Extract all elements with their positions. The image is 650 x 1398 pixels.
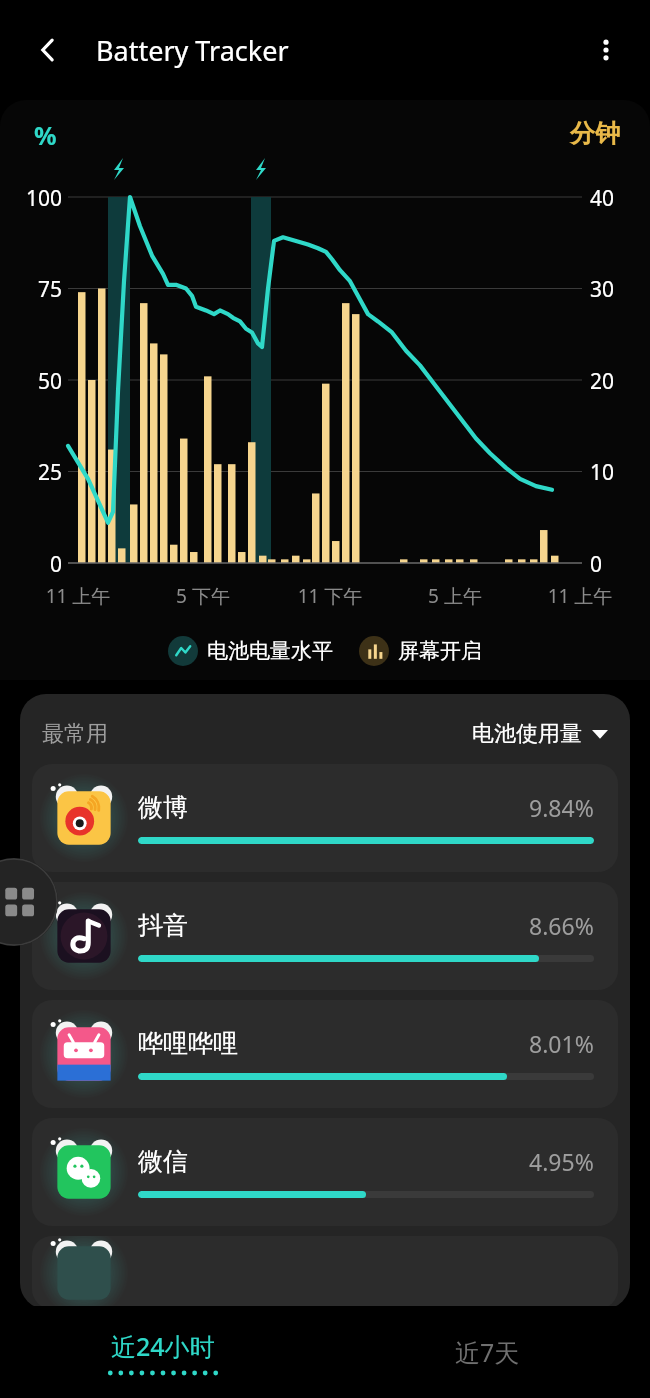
button[interactable]: 哗哩哗哩 — [32, 1000, 618, 1108]
button[interactable]: 屏幕开启 — [359, 636, 482, 666]
staticText: 11 上午 — [23, 583, 133, 609]
staticText: 分钟 — [570, 118, 620, 149]
staticText: 11 下午 — [275, 583, 385, 609]
button[interactable]: 电池电量水平 — [168, 636, 333, 666]
staticText: 8.01% — [529, 1028, 594, 1059]
staticText: Battery Tracker — [96, 32, 289, 69]
button[interactable]: 近7天 — [325, 1306, 650, 1398]
staticText: 30 — [590, 275, 636, 304]
staticText: 100 — [0, 184, 62, 213]
button[interactable]: 微博 — [32, 764, 618, 872]
staticText: 0 — [590, 550, 636, 579]
staticText: 电池使用量 — [472, 720, 582, 748]
button[interactable]: More options — [580, 24, 632, 76]
staticText: 11 上午 — [525, 583, 635, 609]
button[interactable]: 抖音 — [32, 882, 618, 990]
staticText: 10 — [590, 458, 636, 487]
staticText: 近7天 — [455, 1335, 520, 1369]
staticText: 20 — [590, 367, 636, 396]
button[interactable]: 电池使用量 — [472, 720, 608, 748]
staticText: 4.95% — [529, 1146, 594, 1177]
staticText: 微信 — [138, 1146, 188, 1177]
staticText: % — [34, 118, 57, 152]
staticText: 5 上午 — [400, 583, 510, 609]
button[interactable]: 近24小时 — [0, 1306, 325, 1398]
staticText: 50 — [0, 367, 62, 396]
staticText: 0 — [0, 550, 62, 579]
button[interactable] — [32, 1236, 618, 1309]
staticText: 9.84% — [529, 792, 594, 823]
staticText: 电池电量水平 — [207, 638, 333, 664]
staticText: 抖音 — [138, 910, 188, 941]
staticText: 近24小时 — [111, 1329, 215, 1363]
staticText: 25 — [0, 458, 62, 487]
button[interactable]: 微信 — [32, 1118, 618, 1226]
button[interactable]: Apps grid — [0, 858, 58, 946]
staticText: 8.66% — [529, 910, 594, 941]
staticText: 75 — [0, 275, 62, 304]
staticText: 哗哩哗哩 — [138, 1028, 238, 1059]
staticText: 微博 — [138, 792, 188, 823]
button[interactable]: Back — [22, 24, 74, 76]
staticText: 屏幕开启 — [398, 638, 482, 664]
staticText: 5 下午 — [148, 583, 258, 609]
staticText: 最常用 — [42, 720, 108, 748]
staticText: 40 — [590, 184, 636, 213]
